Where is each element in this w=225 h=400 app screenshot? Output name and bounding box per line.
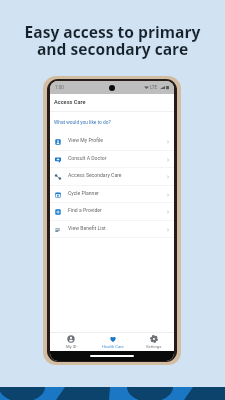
staticText: Access Care	[54, 99, 86, 106]
staticText: Access Secondary Care	[68, 172, 122, 178]
button[interactable]: Access Secondary Care	[50, 168, 174, 186]
staticText: Find a Provider	[68, 207, 102, 213]
button[interactable]: View My Profile	[50, 133, 174, 151]
button[interactable]: Settings	[133, 333, 174, 351]
button[interactable]: View Benefit List	[50, 221, 174, 238]
staticText: Easy access to primary and secondary car…	[0, 21, 225, 59]
staticText: View Benefit List	[68, 225, 106, 231]
staticText: View My Profile	[68, 137, 103, 143]
button[interactable]: Consult A Doctor	[50, 151, 174, 168]
staticText: 1:00	[55, 85, 64, 90]
staticText: Health Care	[102, 344, 124, 349]
button[interactable]: Cycle Planner	[50, 186, 174, 203]
staticText: Cycle Planner	[68, 190, 99, 196]
staticText: Consult A Doctor	[68, 155, 107, 161]
button[interactable]: My ID	[50, 333, 92, 351]
staticText: What would you like to do?	[54, 120, 111, 126]
button[interactable]: Health Care	[92, 333, 133, 351]
button[interactable]: Find a Provider	[50, 203, 174, 221]
staticText: My ID	[66, 344, 77, 349]
staticText: LTE	[150, 85, 158, 90]
staticText: Settings	[146, 344, 162, 349]
